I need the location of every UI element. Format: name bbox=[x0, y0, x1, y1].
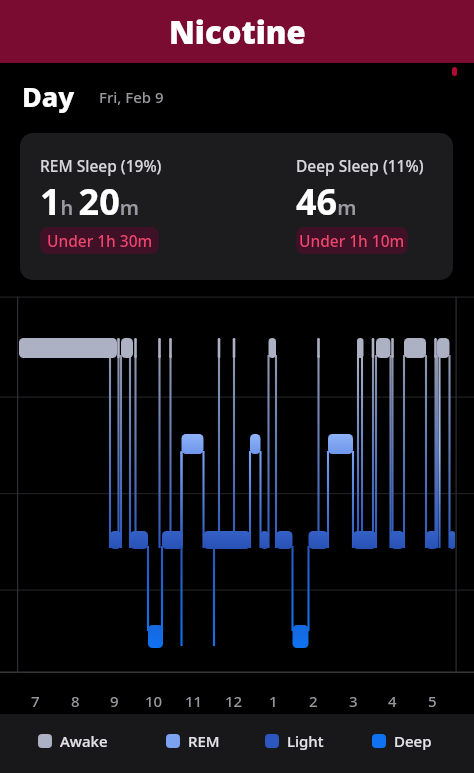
staticText: Under 1h 30m bbox=[47, 230, 153, 251]
staticText: Light bbox=[287, 731, 324, 751]
staticText: 8 bbox=[71, 691, 80, 711]
staticText: 12 bbox=[225, 691, 243, 711]
staticText: 5 bbox=[428, 691, 437, 711]
staticText: 3 bbox=[349, 691, 358, 711]
button[interactable]: Under 1h 30m bbox=[40, 227, 159, 254]
staticText: Nicotine bbox=[169, 11, 306, 53]
staticText: Day bbox=[22, 78, 75, 115]
staticText: Awake bbox=[60, 731, 108, 751]
staticText: Under 1h 10m bbox=[299, 230, 405, 251]
button[interactable]: REM bbox=[166, 731, 220, 751]
staticText: 7 bbox=[31, 691, 40, 711]
staticText: 10 bbox=[145, 691, 163, 711]
button[interactable]: Under 1h 10m bbox=[296, 227, 408, 254]
staticText: Fri, Feb 9 bbox=[99, 87, 164, 107]
staticText: REM Sleep (19%) bbox=[40, 155, 162, 176]
staticText: Deep Sleep (11%) bbox=[296, 155, 424, 176]
staticText: REM bbox=[188, 731, 220, 751]
staticText: 9 bbox=[110, 691, 119, 711]
staticText: 4 bbox=[388, 691, 397, 711]
button[interactable]: Day bbox=[22, 78, 164, 115]
staticText: 11 bbox=[185, 691, 203, 711]
staticText: 46m bbox=[296, 177, 357, 226]
staticText: Deep bbox=[394, 731, 432, 751]
button[interactable]: Awake bbox=[38, 731, 108, 751]
button[interactable]: REM Sleep (19%) bbox=[20, 133, 453, 280]
staticText: 2 bbox=[309, 691, 318, 711]
staticText: 1h 20m bbox=[40, 177, 139, 226]
button[interactable]: Deep bbox=[372, 731, 432, 751]
button[interactable]: Light bbox=[265, 731, 324, 751]
staticText: 1 bbox=[269, 691, 278, 711]
